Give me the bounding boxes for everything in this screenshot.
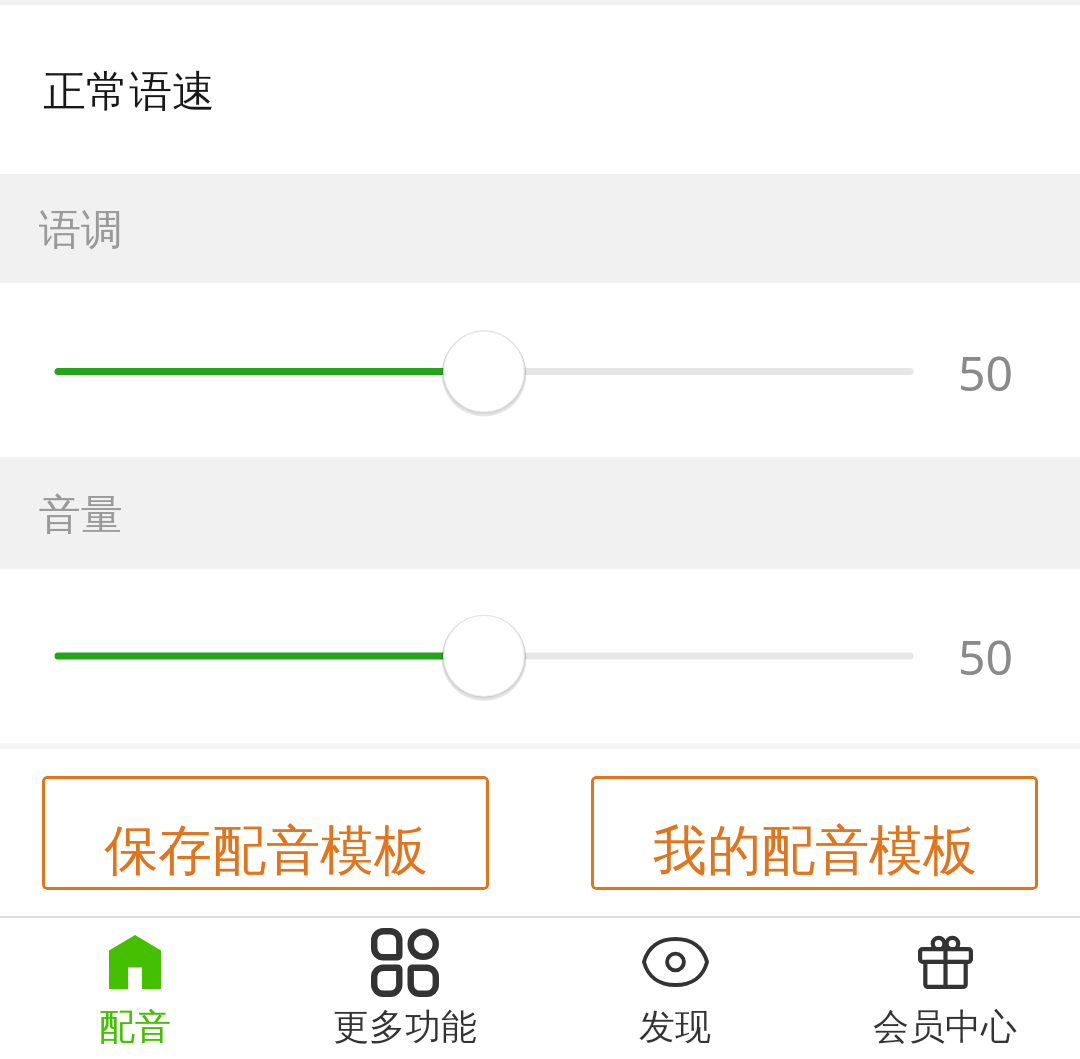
staticText: 配音 [99, 1004, 171, 1049]
staticText: 更多功能 [333, 1004, 477, 1049]
staticText: 正常语速 [43, 65, 215, 119]
staticText: 发现 [639, 1004, 711, 1049]
button[interactable]: 会员中心 [810, 918, 1080, 1059]
staticText: 我的配音模板 [653, 817, 977, 885]
button[interactable]: 保存配音模板 [42, 776, 489, 890]
staticText: 50 [958, 624, 1013, 689]
button[interactable]: 发现 [540, 918, 810, 1059]
button[interactable]: 我的配音模板 [591, 776, 1038, 890]
button[interactable]: 50 [0, 569, 1080, 743]
staticText: 语调 [39, 204, 123, 257]
staticText: 音量 [39, 489, 123, 542]
staticText: 会员中心 [873, 1004, 1017, 1049]
button[interactable]: 50 [0, 283, 1080, 457]
staticText: 50 [958, 340, 1013, 405]
button[interactable]: 更多功能 [270, 918, 540, 1059]
button[interactable]: 配音 [0, 918, 270, 1059]
staticText: 保存配音模板 [104, 817, 428, 885]
